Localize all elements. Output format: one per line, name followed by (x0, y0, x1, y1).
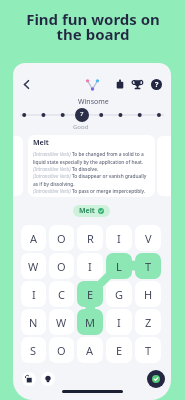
staticText: Melt (79, 206, 95, 216)
button[interactable]: Leaderboard (129, 76, 145, 92)
staticText: L (116, 259, 122, 274)
button[interactable]: I (21, 281, 46, 307)
button[interactable]: Melt (73, 205, 110, 217)
button[interactable]: H (135, 281, 161, 307)
staticText: H (144, 287, 153, 302)
button[interactable]: O (49, 253, 74, 279)
staticText: (Intransitive Verb) To be changed from a… (33, 151, 151, 166)
staticText: W (56, 315, 67, 330)
staticText: Good (73, 123, 89, 131)
staticText: (Intransitive Verb) To pass or merge imp… (33, 188, 146, 195)
staticText: I (117, 231, 121, 246)
staticText: Winsome (78, 97, 109, 107)
staticText: O (57, 259, 66, 274)
staticText: T (145, 259, 152, 274)
button[interactable]: Z (135, 309, 161, 335)
button[interactable]: T (135, 337, 161, 363)
staticText: Z (145, 315, 152, 330)
staticText: W (28, 259, 39, 274)
button[interactable]: O (49, 337, 74, 363)
staticText: I (88, 259, 92, 274)
staticText: M (85, 315, 95, 330)
button[interactable]: I (106, 225, 132, 251)
button[interactable]: Hint (41, 372, 55, 386)
button[interactable]: C (49, 281, 74, 307)
button[interactable]: I (106, 309, 132, 335)
button[interactable]: M (77, 309, 103, 335)
staticText: Melt (33, 138, 49, 148)
staticText: A (30, 231, 38, 246)
staticText: E (87, 287, 94, 302)
button[interactable]: Submit (147, 370, 165, 388)
staticText: T (145, 343, 152, 358)
button[interactable]: Melt (28, 135, 155, 197)
staticText: A (86, 343, 94, 358)
button[interactable]: T (135, 253, 161, 279)
button[interactable]: V (135, 225, 161, 251)
button[interactable]: I (77, 253, 103, 279)
staticText: 7 (80, 110, 84, 118)
staticText: O (57, 343, 66, 358)
button[interactable]: Help (148, 76, 164, 92)
button[interactable]: Shuffle (22, 372, 36, 386)
button[interactable]: N (21, 309, 46, 335)
staticText: V (145, 231, 152, 246)
staticText: (Intransitive Verb) To dissolve. (33, 166, 99, 173)
staticText: (Intransitive Verb) To disappear or vani… (33, 173, 151, 188)
staticText: Find fun words on the board (26, 9, 160, 44)
button[interactable]: Word of the day (84, 76, 100, 92)
staticText: C (58, 287, 65, 302)
button[interactable]: G (106, 281, 132, 307)
button[interactable]: E (77, 281, 103, 307)
button[interactable]: S (21, 337, 46, 363)
staticText: S (30, 343, 37, 358)
button[interactable]: Back (18, 76, 34, 92)
staticText: N (29, 315, 38, 330)
button[interactable]: A (21, 225, 46, 251)
staticText: ? (155, 80, 159, 90)
staticText: O (57, 231, 66, 246)
staticText: I (117, 315, 121, 330)
button[interactable]: R (77, 225, 103, 251)
button[interactable]: L (106, 253, 132, 279)
button[interactable]: E (106, 337, 132, 363)
button[interactable]: W (49, 309, 74, 335)
staticText: I (32, 287, 36, 302)
button[interactable]: O (49, 225, 74, 251)
button[interactable]: A (77, 337, 103, 363)
button[interactable]: W (21, 253, 46, 279)
button[interactable]: Store (112, 76, 128, 92)
staticText: R (87, 231, 94, 246)
staticText: G (115, 287, 124, 302)
staticText: E (116, 343, 123, 358)
